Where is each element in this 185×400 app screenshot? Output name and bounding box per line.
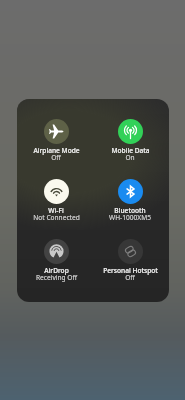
staticText: Receiving Off	[36, 273, 77, 282]
button[interactable]: Airplane Mode	[19, 115, 93, 152]
button[interactable]: AirDrop	[19, 235, 93, 272]
button[interactable]: Personal Hotspot	[93, 235, 167, 272]
staticText: AirDrop	[44, 266, 69, 275]
staticText: Bluetooth	[114, 206, 146, 215]
staticText: Wi-Fi	[48, 206, 64, 215]
staticText: On	[125, 153, 135, 162]
staticText: Off	[125, 273, 135, 282]
button[interactable]: Bluetooth	[93, 175, 167, 212]
staticText: Not Connected	[33, 213, 80, 222]
staticText: Airplane Mode	[33, 146, 80, 155]
staticText: Personal Hotspot	[103, 266, 158, 275]
staticText: WH-1000XM5	[109, 213, 151, 222]
staticText: Off	[51, 153, 61, 162]
staticText: Mobile Data	[111, 146, 150, 155]
button[interactable]: Wi-Fi	[19, 175, 93, 212]
button[interactable]: Mobile Data	[93, 115, 167, 152]
